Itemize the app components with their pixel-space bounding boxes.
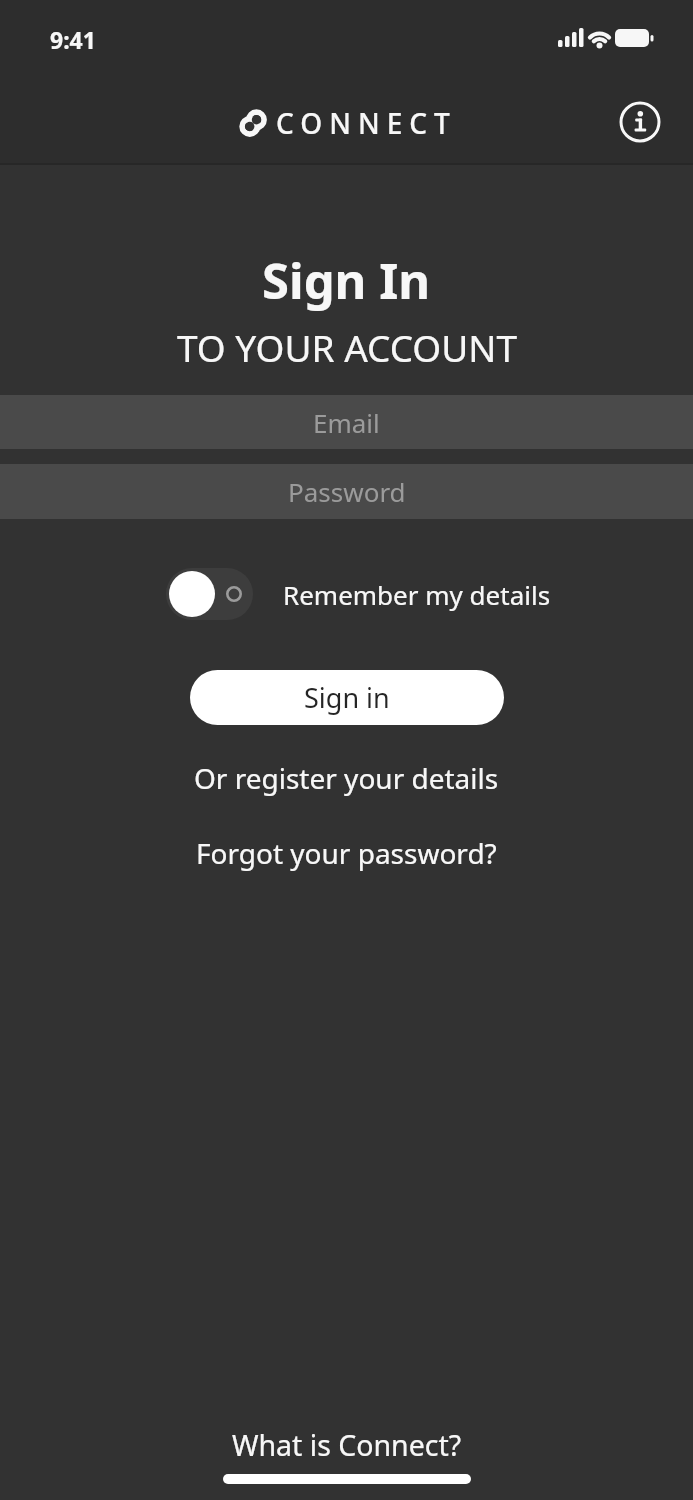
staticText: Forgot your password? bbox=[196, 834, 497, 872]
staticText: Email bbox=[313, 405, 380, 440]
button[interactable]: Forgot your password? bbox=[196, 830, 497, 876]
staticText: 9:41 bbox=[50, 24, 96, 55]
button[interactable]: Password bbox=[0, 464, 693, 519]
staticText: Password bbox=[288, 474, 406, 509]
staticText: Or register your details bbox=[194, 759, 499, 797]
staticText: Remember my details bbox=[283, 577, 551, 612]
button[interactable]: Or register your details bbox=[194, 755, 499, 801]
button[interactable] bbox=[618, 100, 662, 144]
staticText: What is Connect? bbox=[232, 1426, 462, 1465]
button[interactable]: Email bbox=[0, 395, 693, 449]
button[interactable] bbox=[166, 568, 253, 620]
staticText: Sign In bbox=[262, 247, 431, 314]
button[interactable]: Sign in bbox=[190, 670, 504, 725]
staticText: CONNECT bbox=[276, 104, 457, 142]
staticText: TO YOUR ACCOUNT bbox=[177, 322, 517, 370]
button[interactable]: What is Connect? bbox=[232, 1424, 462, 1466]
staticText: Sign in bbox=[304, 679, 390, 716]
